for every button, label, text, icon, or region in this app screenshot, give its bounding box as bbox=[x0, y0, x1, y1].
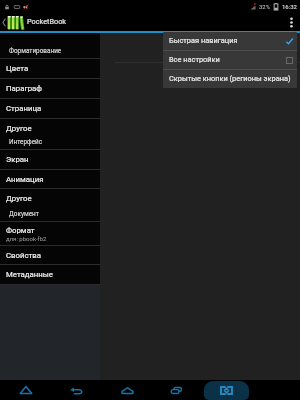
staticText: 16:32 bbox=[282, 3, 297, 10]
staticText: Документ bbox=[9, 210, 39, 218]
button[interactable]: Анимация bbox=[0, 170, 100, 188]
staticText: Другое bbox=[6, 194, 32, 203]
staticText: для: pbook-fb2 bbox=[6, 235, 47, 242]
staticText: Страница bbox=[6, 104, 42, 113]
button[interactable]: Страница bbox=[0, 99, 100, 118]
staticText: Свойства bbox=[6, 251, 42, 260]
staticText: Метаданные bbox=[6, 270, 53, 279]
button[interactable]: Другое bbox=[0, 189, 100, 208]
button[interactable]: Toggle fullscreen bbox=[204, 381, 249, 400]
staticText: Анимация bbox=[6, 175, 44, 184]
staticText: Скрытые кнопки (регионы экрана) bbox=[169, 74, 291, 83]
button[interactable]: Экран bbox=[0, 150, 100, 169]
staticText: 32% bbox=[259, 3, 271, 10]
staticText: Формат bbox=[6, 226, 35, 235]
button[interactable]: Все настройки bbox=[163, 51, 297, 69]
button[interactable]: Другое bbox=[0, 119, 100, 138]
button[interactable]: Home bbox=[111, 380, 143, 400]
button[interactable]: Back bbox=[60, 380, 92, 400]
staticText: Другое bbox=[6, 124, 32, 133]
button[interactable]: Цвета bbox=[0, 59, 100, 78]
staticText: Форматирование bbox=[9, 47, 62, 55]
button[interactable]: Формат bbox=[0, 222, 100, 245]
staticText: Параграф bbox=[6, 84, 42, 93]
staticText: Интерфейс bbox=[9, 138, 43, 146]
staticText: Экран bbox=[6, 155, 29, 164]
staticText: PocketBook bbox=[27, 17, 66, 26]
button[interactable]: Параграф bbox=[0, 79, 100, 98]
button[interactable]: More options bbox=[282, 13, 300, 31]
staticText: Все настройки bbox=[169, 55, 220, 64]
staticText: Цвета bbox=[6, 64, 29, 73]
button[interactable]: Метаданные bbox=[0, 265, 100, 284]
button[interactable]: Recent apps bbox=[160, 380, 192, 400]
button[interactable]: Свойства bbox=[0, 246, 100, 264]
button[interactable]: Eject bbox=[10, 380, 42, 400]
button[interactable]: Быстрая навигация bbox=[163, 32, 297, 50]
button[interactable]: Navigate up bbox=[0, 13, 24, 31]
staticText: Быстрая навигация bbox=[169, 36, 238, 45]
button[interactable]: Скрытые кнопки (регионы экрана) bbox=[163, 70, 297, 88]
